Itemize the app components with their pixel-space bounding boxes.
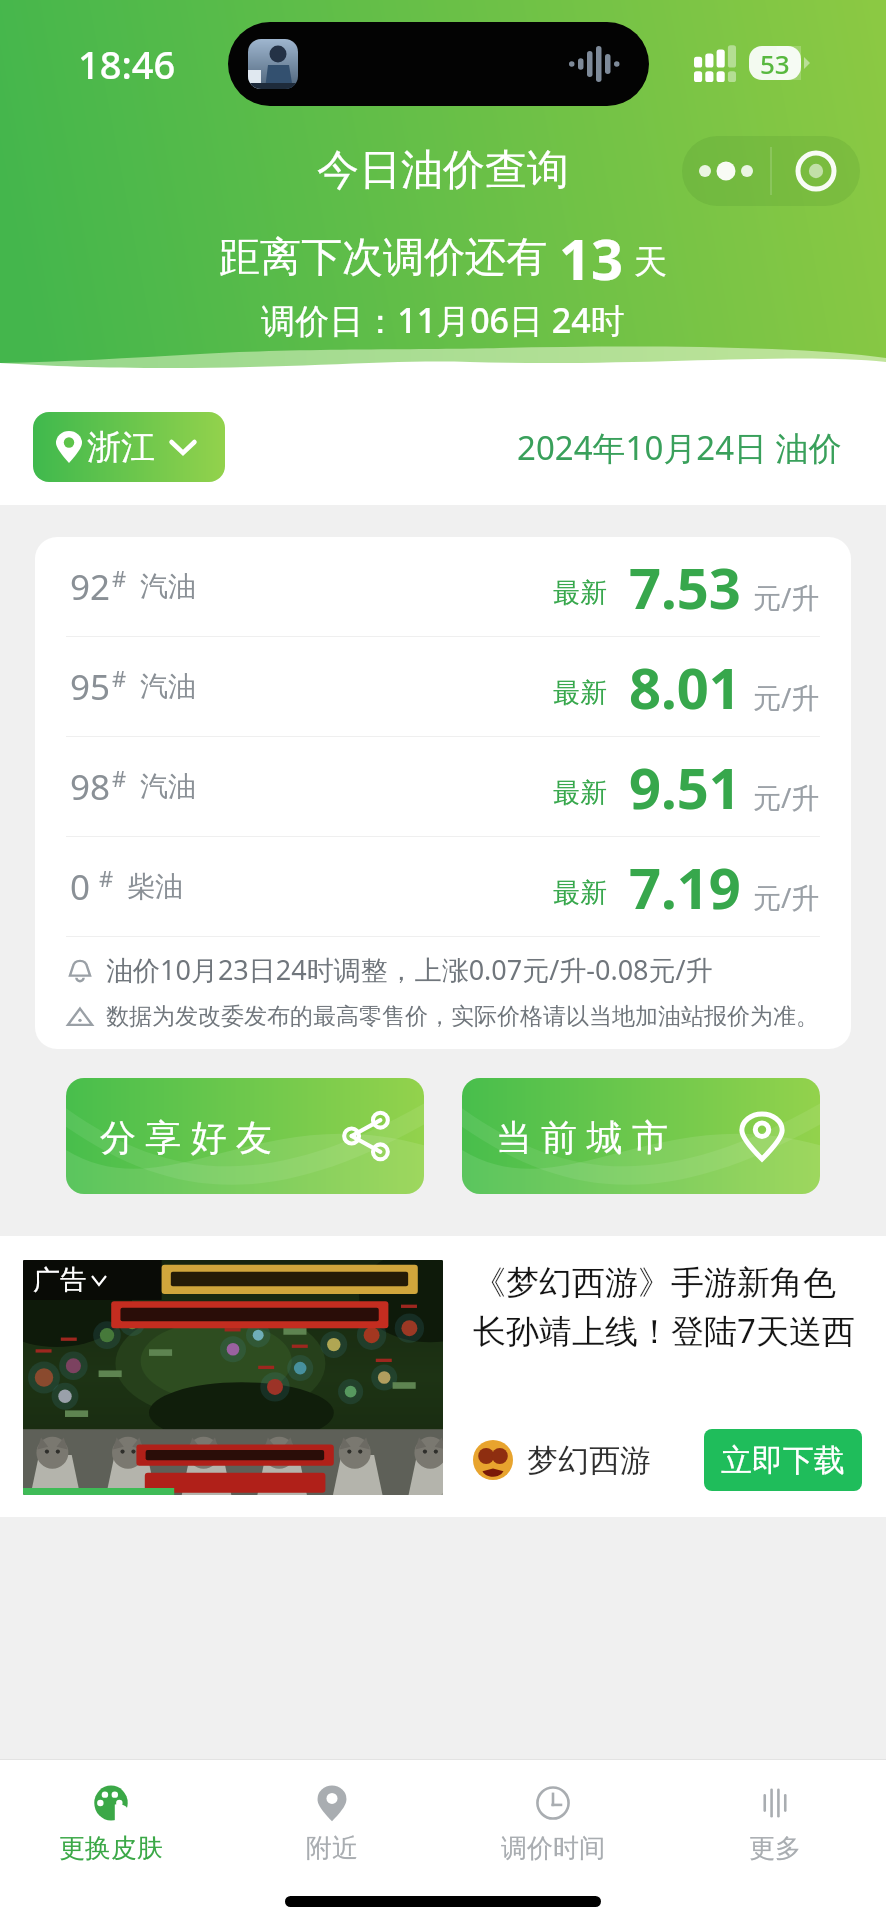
button[interactable]: Current city — [462, 1078, 820, 1194]
staticText: 98 — [70, 763, 111, 811]
staticText: 92 — [70, 563, 111, 611]
staticText: 2024年10月24日 油价 — [517, 425, 842, 470]
staticText: 元/升 — [753, 678, 820, 716]
staticText: 天 — [634, 241, 667, 283]
staticText: 《梦幻西游》手游新角色 长孙靖上线！登陆7天送西 — [473, 1262, 855, 1353]
staticText: 最新 — [553, 776, 607, 810]
staticText: 18:46 — [78, 38, 176, 90]
staticText: 53 — [760, 46, 790, 80]
staticText: 95 — [70, 663, 111, 711]
button[interactable]: More options — [682, 136, 770, 206]
staticText: 9.51 — [629, 749, 741, 825]
staticText: 柴油 — [127, 869, 183, 904]
staticText: 浙江 — [87, 426, 155, 469]
staticText: 最新 — [553, 576, 607, 610]
staticText: 附近 — [306, 1832, 358, 1865]
staticText: 油价10月23日24时调整，上涨0.07元/升-0.08元/升 — [106, 951, 713, 988]
staticText: 0 — [70, 863, 91, 911]
button[interactable]: 附近 — [221, 1760, 442, 1877]
staticText: 汽油 — [140, 669, 196, 704]
staticText: 梦幻西游 — [527, 1441, 651, 1480]
staticText: 广告 — [33, 1263, 87, 1297]
staticText: # — [112, 763, 127, 793]
staticText: 当 前 城 市 — [496, 1112, 669, 1161]
staticText: 更多 — [749, 1832, 801, 1865]
staticText: 元/升 — [753, 778, 820, 816]
staticText: 调价日：11月06日 24时 — [0, 297, 886, 343]
staticText: 距离下次调价还有 — [219, 232, 547, 284]
staticText: 今日油价查询 — [0, 144, 886, 197]
button[interactable]: 调价时间 — [442, 1760, 664, 1877]
staticText: # — [99, 863, 114, 893]
button[interactable]: 浙江 — [33, 412, 225, 482]
staticText: 7.53 — [629, 549, 741, 625]
button[interactable]: 更多 — [664, 1760, 886, 1877]
staticText: 元/升 — [753, 578, 820, 616]
button[interactable]: 95 — [35, 637, 851, 736]
button[interactable]: Close mini program — [772, 136, 860, 206]
staticText: # — [112, 663, 127, 693]
staticText: 最新 — [553, 876, 607, 910]
staticText: 13 — [559, 220, 624, 292]
staticText: 更换皮肤 — [59, 1832, 163, 1865]
staticText: 汽油 — [140, 769, 196, 804]
staticText: 8.01 — [629, 649, 741, 725]
staticText: 立即下载 — [721, 1441, 845, 1480]
staticText: 7.19 — [629, 849, 741, 925]
button[interactable]: 92 — [35, 537, 851, 636]
button[interactable]: 0 — [35, 837, 851, 936]
button[interactable]: 更换皮肤 — [0, 1760, 221, 1877]
staticText: 调价时间 — [501, 1832, 605, 1865]
staticText: 元/升 — [753, 878, 820, 916]
staticText: 最新 — [553, 676, 607, 710]
staticText: # — [112, 563, 127, 593]
button[interactable]: 98 — [35, 737, 851, 836]
staticText: 分 享 好 友 — [100, 1112, 273, 1161]
button[interactable]: 立即下载 — [704, 1429, 862, 1491]
staticText: 汽油 — [140, 569, 196, 604]
button[interactable]: Share with friends — [66, 1078, 424, 1194]
staticText: 数据为发改委发布的最高零售价，实际价格请以当地加油站报价为准。 — [106, 1002, 819, 1031]
